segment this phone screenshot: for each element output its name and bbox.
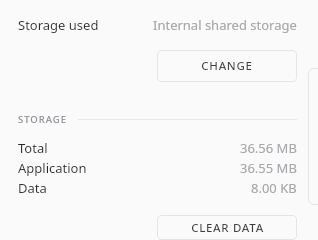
staticText: 36.55 MB: [240, 159, 297, 177]
staticText: CLEAR DATA: [191, 220, 264, 236]
staticText: STORAGE: [18, 113, 68, 126]
button[interactable]: CLEAR DATA: [157, 215, 297, 240]
staticText: Internal shared storage: [153, 16, 297, 34]
staticText: CHANGE: [201, 58, 253, 74]
staticText: Storage used: [18, 16, 99, 34]
staticText: 36.56 MB: [240, 139, 297, 157]
button[interactable]: CHANGE: [157, 50, 297, 82]
staticText: Total: [18, 139, 48, 157]
staticText: Application: [18, 159, 87, 177]
staticText: Data: [18, 179, 47, 197]
staticText: 8.00 KB: [251, 179, 297, 197]
